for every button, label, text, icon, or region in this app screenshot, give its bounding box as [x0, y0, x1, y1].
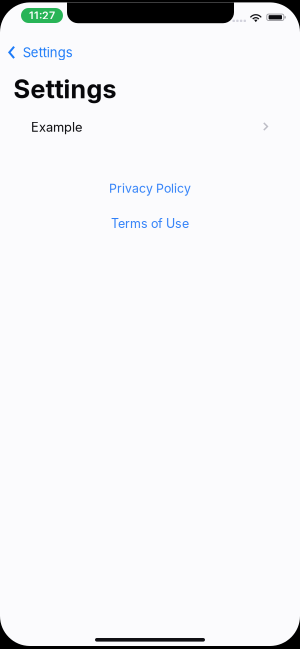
button[interactable]: Settings	[0, 42, 100, 64]
staticText: Settings	[23, 45, 73, 60]
button[interactable]: Terms of Use	[0, 212, 300, 234]
staticText: 11:27	[29, 9, 55, 22]
staticText: Settings	[13, 74, 116, 104]
staticText: Example	[31, 119, 82, 135]
button[interactable]: Privacy Policy	[0, 177, 300, 199]
staticText: Terms of Use	[111, 216, 189, 231]
staticText: Privacy Policy	[109, 181, 191, 196]
button[interactable]: Example	[0, 114, 300, 141]
